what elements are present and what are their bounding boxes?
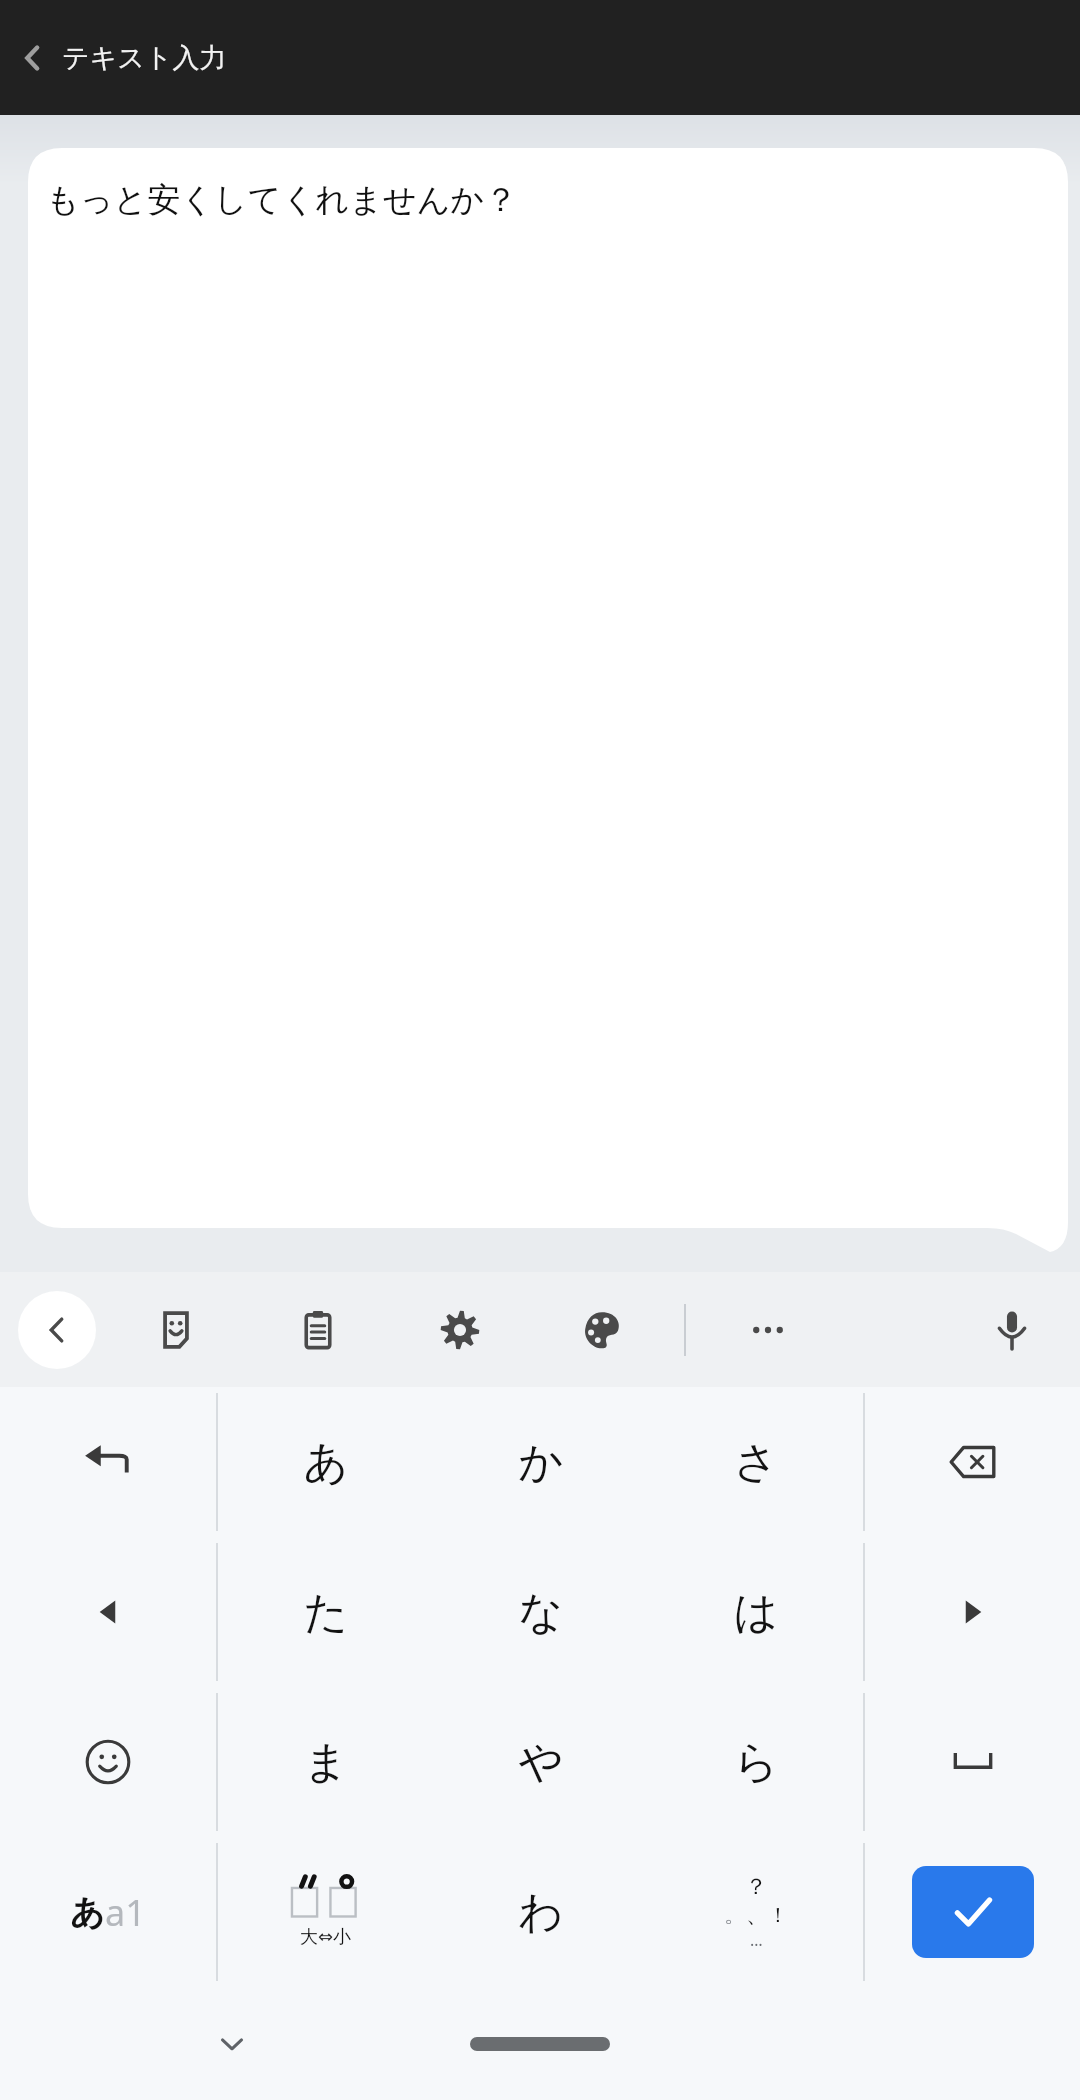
button[interactable]: Clipboard <box>282 1294 354 1366</box>
staticText: 。 <box>724 1901 746 1929</box>
staticText: 大⇔小 <box>300 1926 352 1949</box>
staticText: な <box>518 1585 564 1640</box>
button[interactable]: Hide keyboard <box>200 2012 264 2076</box>
button[interactable]: Settings <box>424 1294 496 1366</box>
button[interactable]: あ <box>218 1387 433 1537</box>
button[interactable]: さ <box>648 1387 863 1537</box>
staticText: 、 <box>746 1901 768 1929</box>
button[interactable]: Punctuation <box>648 1837 863 1987</box>
staticText: は <box>733 1585 779 1640</box>
staticText: か <box>518 1435 564 1490</box>
staticText: もっと安くしてくれませんか？ <box>46 179 518 221</box>
staticText: さ <box>733 1435 779 1490</box>
staticText: ？ <box>745 1873 767 1901</box>
button[interactable]: Confirm <box>912 1866 1034 1958</box>
button[interactable]: わ <box>433 1837 648 1987</box>
button[interactable]: は <box>648 1537 863 1687</box>
button[interactable]: Space <box>865 1687 1080 1837</box>
button[interactable]: ら <box>648 1687 863 1837</box>
button[interactable]: た <box>218 1537 433 1687</box>
button[interactable] <box>0 115 1080 1272</box>
button[interactable]: ま <box>218 1687 433 1837</box>
staticText: あ <box>303 1435 349 1490</box>
staticText: や <box>518 1735 564 1790</box>
button[interactable]: Undo <box>0 1387 216 1537</box>
staticText: … <box>750 1929 763 1951</box>
staticText: a1 <box>105 1888 146 1937</box>
staticText: わ <box>518 1885 564 1940</box>
staticText: た <box>303 1585 349 1640</box>
button[interactable]: Collapse toolbar <box>18 1291 96 1369</box>
button[interactable]: Move cursor left <box>0 1537 216 1687</box>
button[interactable]: Stickers <box>140 1294 212 1366</box>
button[interactable]: Voice input <box>976 1294 1048 1366</box>
button[interactable]: な <box>433 1537 648 1687</box>
button[interactable]: Theme <box>566 1294 638 1366</box>
button[interactable]: Back <box>10 35 56 81</box>
staticText: ら <box>733 1735 779 1790</box>
button[interactable]: Move cursor right <box>865 1537 1080 1687</box>
button[interactable]: Dakuten and small kana <box>218 1837 433 1987</box>
staticText: あ <box>70 1891 105 1934</box>
button[interactable]: Emoji <box>0 1687 216 1837</box>
button[interactable]: か <box>433 1387 648 1537</box>
button[interactable]: Backspace <box>865 1387 1080 1537</box>
staticText: ！ <box>768 1903 788 1928</box>
button[interactable]: や <box>433 1687 648 1837</box>
staticText: テキスト入力 <box>62 41 227 75</box>
button[interactable]: あ <box>0 1837 216 1987</box>
staticText: ま <box>303 1735 349 1790</box>
button[interactable]: More options <box>732 1294 804 1366</box>
